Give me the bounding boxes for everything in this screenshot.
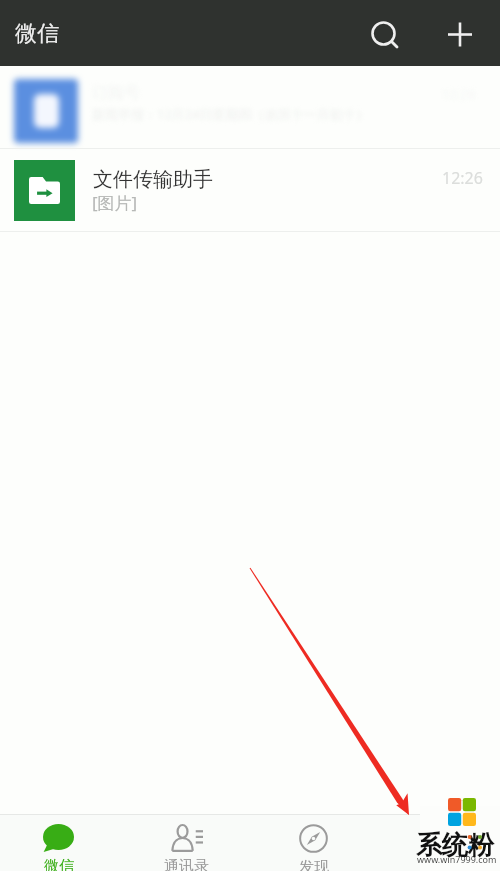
button[interactable]: 我 (378, 815, 500, 871)
staticText: 微信 (44, 857, 74, 871)
staticText: 通讯录 (164, 857, 209, 871)
button[interactable]: 通讯录 (124, 815, 249, 871)
button[interactable]: 文件传输助手 (0, 149, 500, 231)
staticText: 12:26 (442, 167, 483, 189)
staticText: 文件传输助手 (93, 167, 213, 192)
staticText: www.win7999.com (417, 853, 497, 865)
button[interactable]: 发现 (251, 815, 376, 871)
staticText: [图片] (92, 191, 138, 214)
button[interactable]: 微信 (0, 815, 121, 871)
button[interactable]: 订阅号 (0, 66, 500, 148)
button[interactable]: Add (436, 10, 484, 58)
staticText: 发现 (299, 858, 329, 871)
staticText: 我 (433, 857, 448, 871)
button[interactable]: Search (359, 9, 408, 58)
staticText: 微信 (15, 20, 59, 48)
staticText: 系统粉 (416, 829, 494, 862)
